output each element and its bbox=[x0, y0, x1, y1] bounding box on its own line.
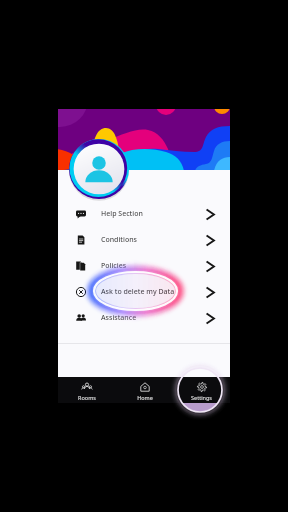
button[interactable]: Rooms bbox=[58, 377, 116, 403]
staticText: Rooms bbox=[78, 394, 96, 401]
button[interactable]: Settings bbox=[173, 377, 230, 403]
staticText: Policies bbox=[101, 261, 127, 271]
staticText: Assistance bbox=[101, 313, 137, 323]
button[interactable]: Assistance bbox=[58, 305, 230, 331]
button[interactable]: Ask to delete my Data bbox=[58, 279, 230, 305]
staticText: Ask to delete my Data bbox=[101, 287, 175, 297]
button[interactable]: Policies bbox=[58, 253, 230, 279]
button[interactable]: Home bbox=[116, 377, 173, 403]
staticText: Conditions bbox=[101, 235, 137, 245]
button[interactable]: Help Section bbox=[58, 201, 230, 227]
staticText: Help Section bbox=[101, 209, 143, 219]
staticText: Home bbox=[137, 394, 153, 401]
button[interactable]: Conditions bbox=[58, 227, 230, 253]
staticText: Settings bbox=[191, 394, 212, 401]
